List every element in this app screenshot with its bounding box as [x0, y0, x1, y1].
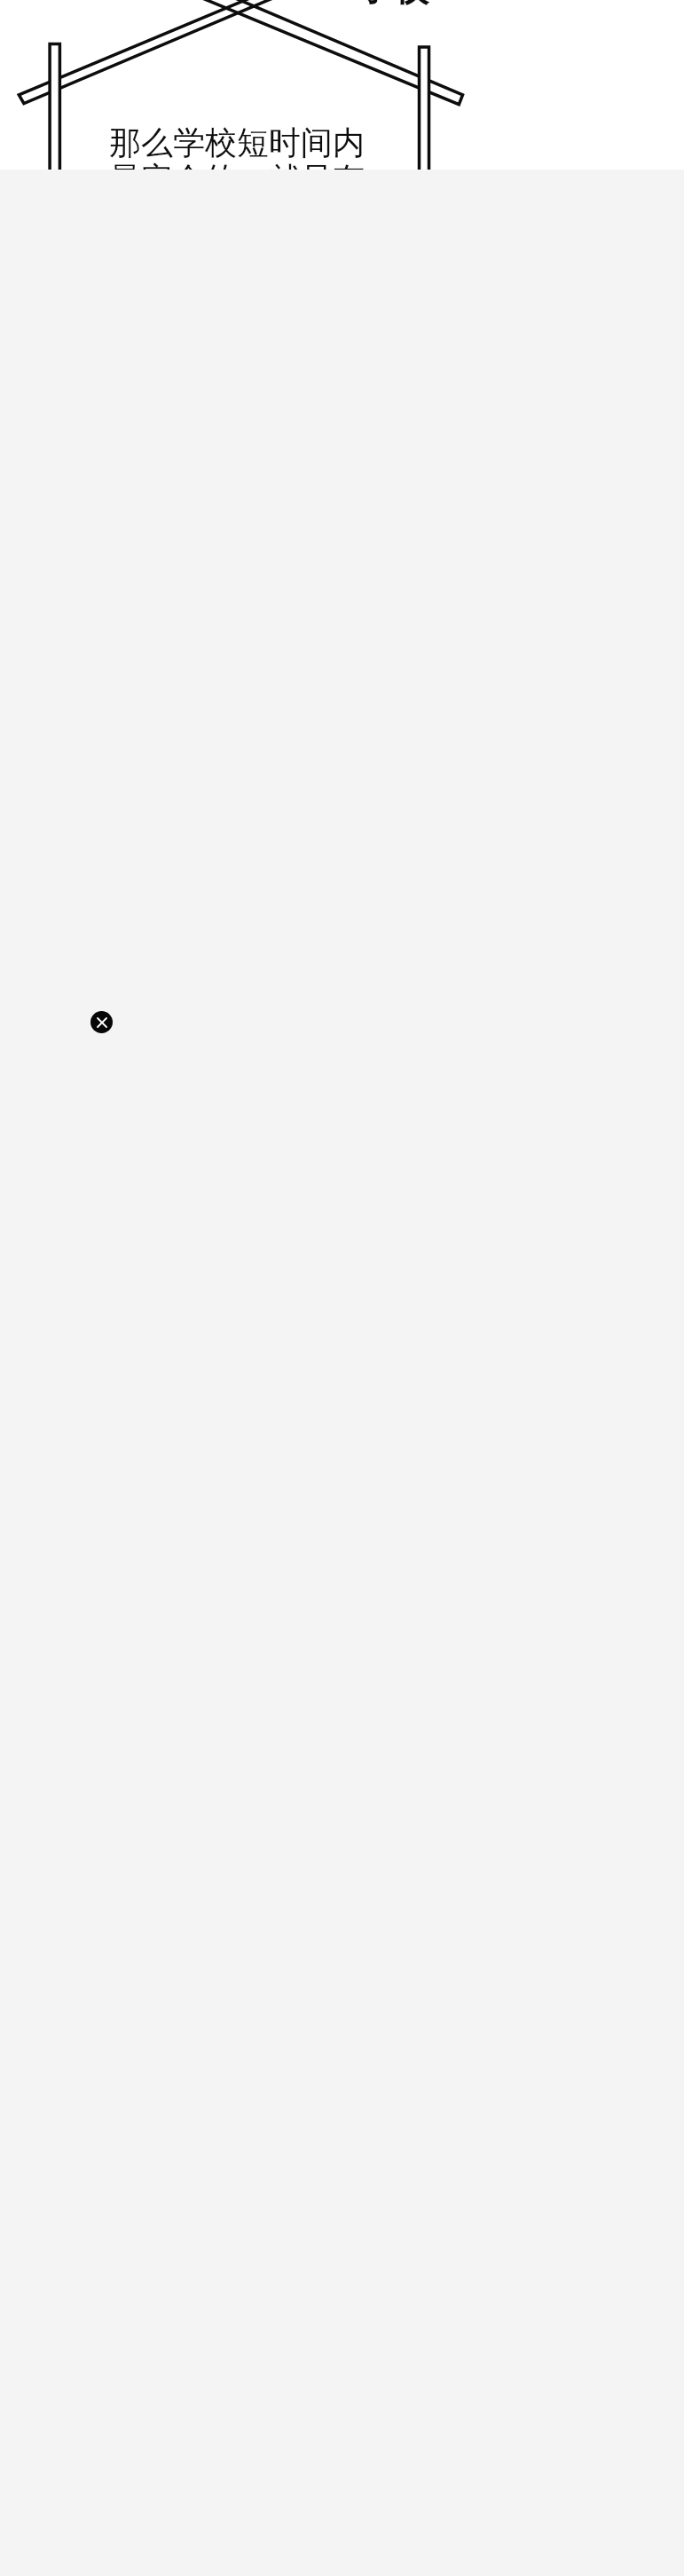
- button[interactable]: Close: [90, 1011, 113, 1033]
- staticText: 学校: [358, 0, 428, 10]
- staticText: 那么学校短时间内: [109, 122, 365, 162]
- staticText: 最安全的，就只有: [109, 159, 365, 170]
